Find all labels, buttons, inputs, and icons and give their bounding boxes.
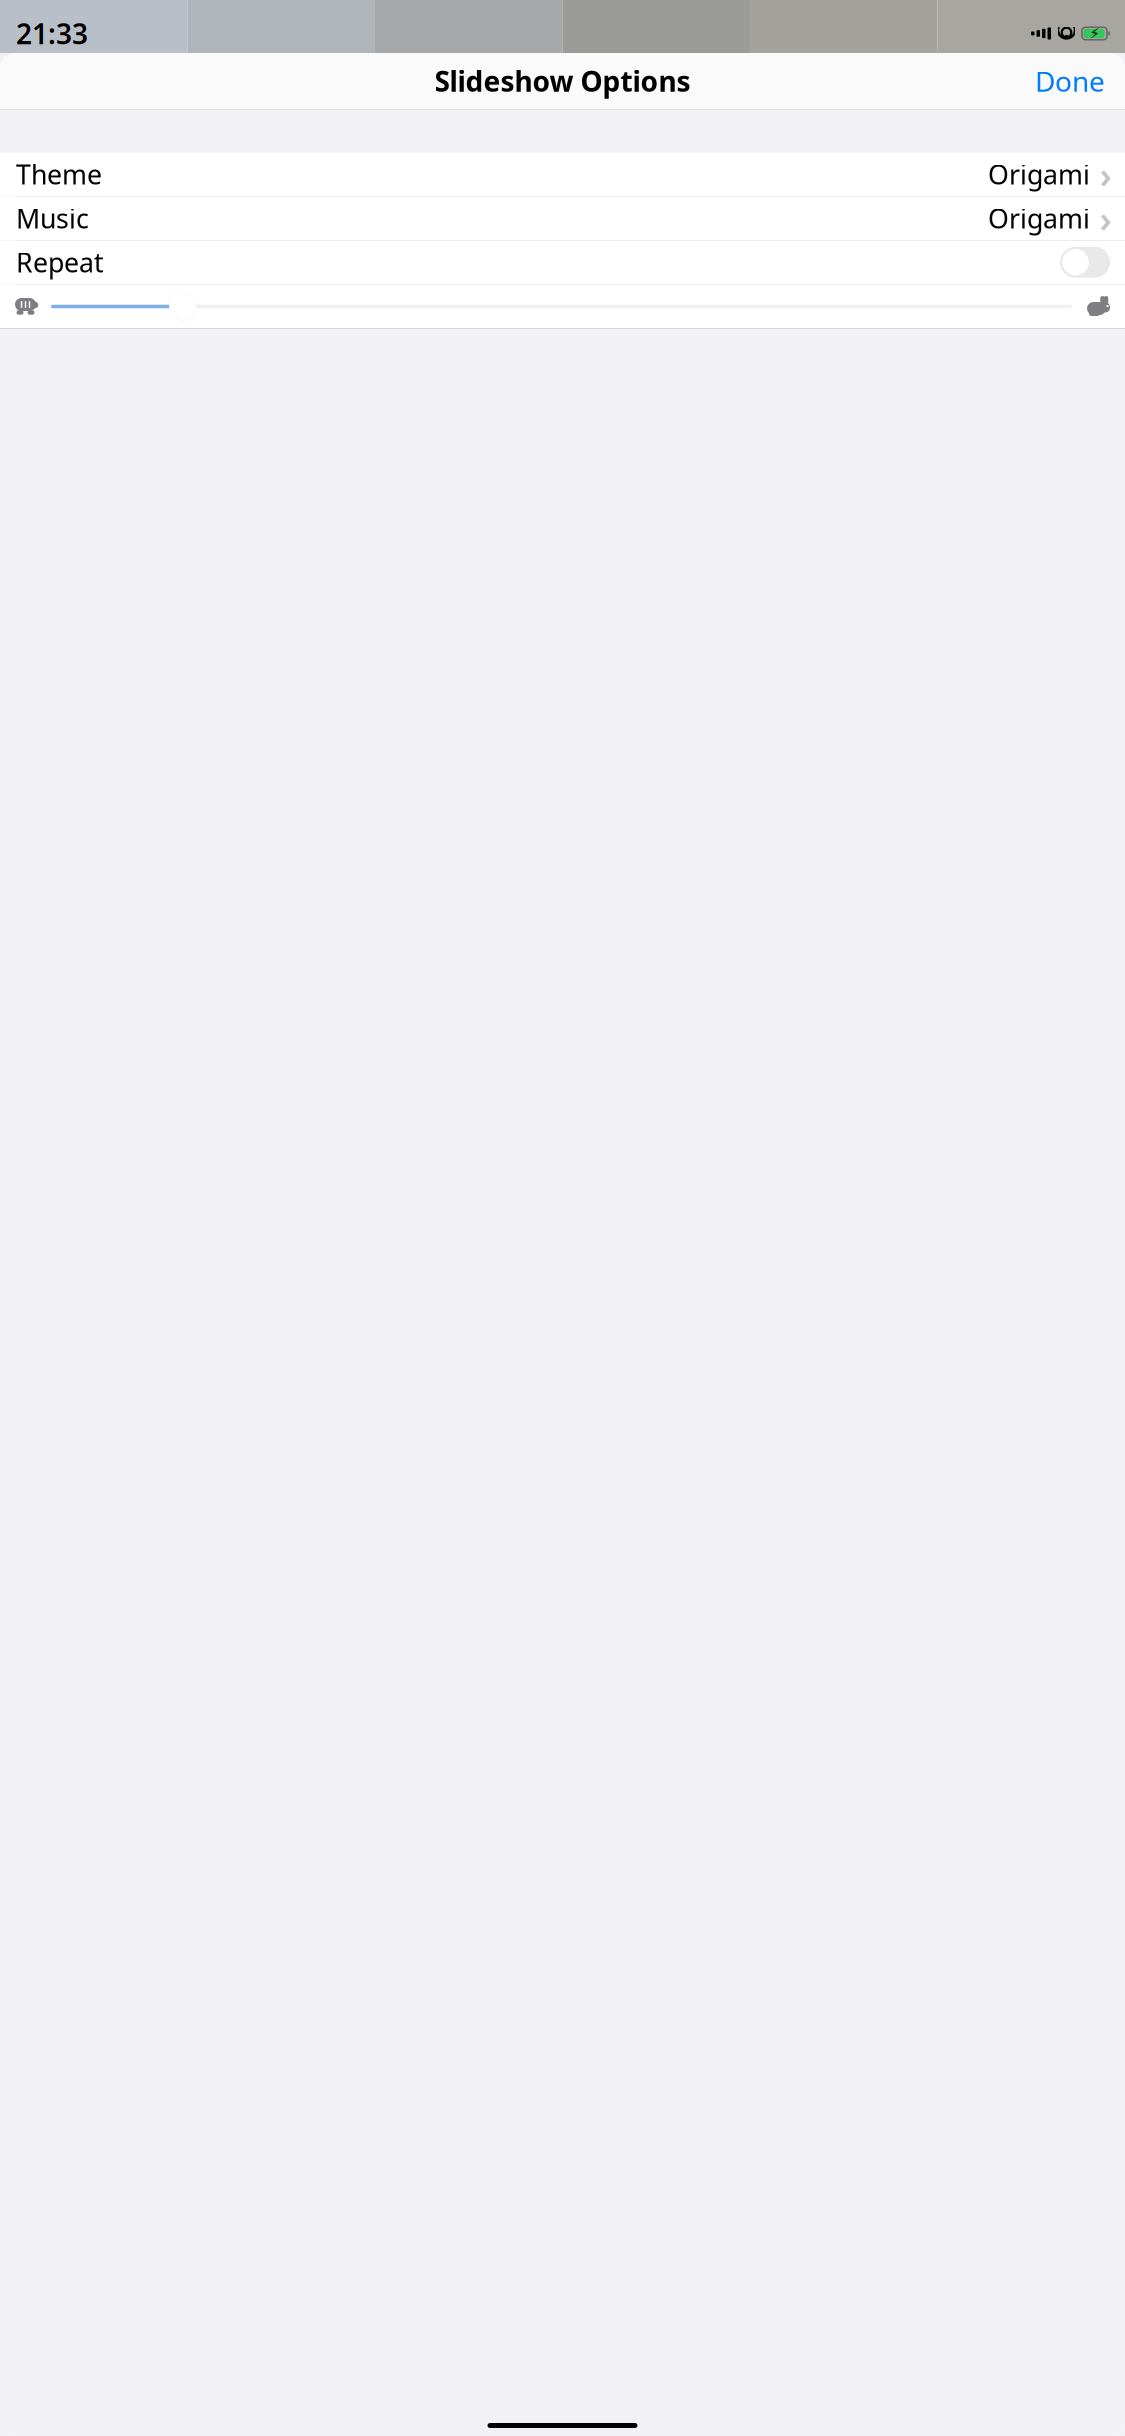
staticText: Done [1035,62,1105,100]
staticText: Slideshow Options [434,62,690,100]
button[interactable]: Music [0,196,1125,240]
staticText: ⚡︎ [1089,25,1099,42]
staticText: Origami [988,200,1090,236]
staticText: Music [16,200,89,236]
staticText: Theme [16,156,102,192]
button[interactable]: Done [1027,56,1113,106]
staticText: Repeat [16,244,104,280]
button[interactable]: Theme [0,152,1125,196]
staticText: › [1099,150,1111,198]
staticText: 21:33 [16,15,88,52]
button[interactable]: Repeat [1060,247,1110,278]
staticText: Origami [988,156,1090,192]
staticText: › [1099,194,1111,242]
